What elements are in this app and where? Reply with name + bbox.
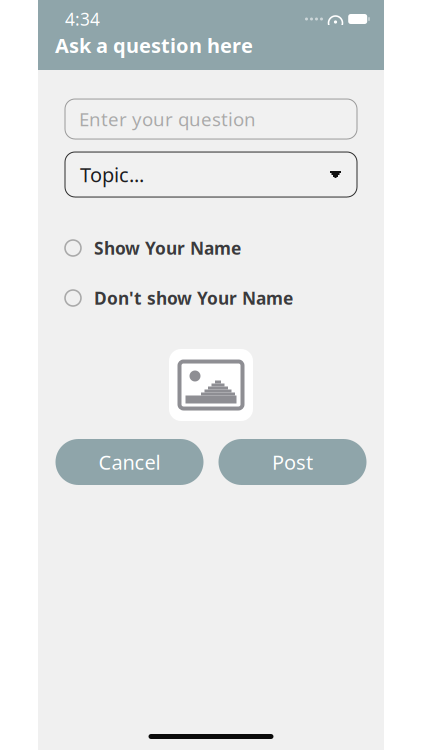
button[interactable]: Cancel [55,439,203,485]
button[interactable]: Add photo [169,349,253,421]
button[interactable]: Show Your Name [65,233,305,263]
staticText: Post [272,449,313,475]
button[interactable]: Topic... [65,152,357,197]
staticText: Show Your Name [94,236,241,259]
staticText: Topic... [80,161,144,188]
button[interactable]: Post [218,439,366,485]
staticText: Don't show Your Name [94,286,293,309]
staticText: 4:34 [65,7,100,30]
staticText: Enter your question [79,107,256,131]
button[interactable]: Don't show Your Name [65,283,305,313]
staticText: Cancel [98,449,160,475]
button[interactable]: Enter your question [65,99,357,139]
staticText: Ask a question here [55,32,253,59]
